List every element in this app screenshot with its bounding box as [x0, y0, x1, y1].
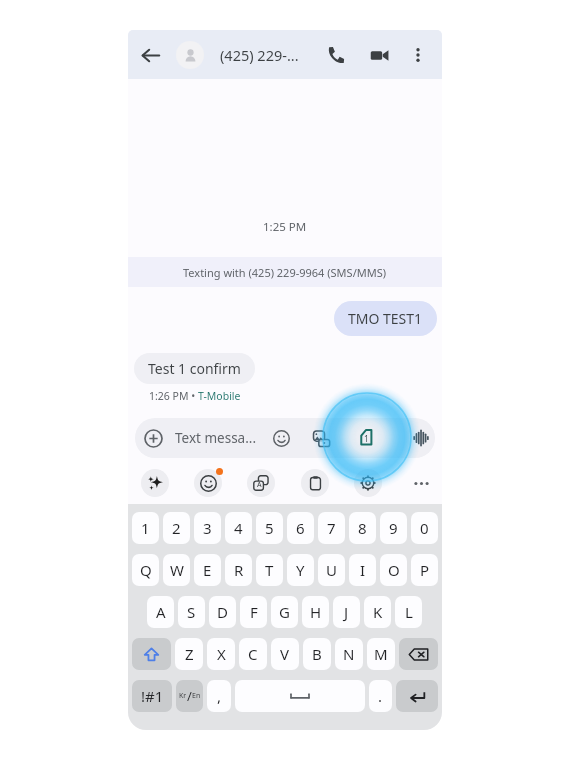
- button[interactable]: Gallery: [308, 425, 334, 451]
- staticText: F: [250, 602, 258, 622]
- button[interactable]: 6: [287, 512, 314, 544]
- staticText: Test 1 confirm: [148, 359, 241, 378]
- staticText: 1:26 PM •: [149, 389, 198, 403]
- staticText: Text messa...: [175, 429, 257, 447]
- button[interactable]: A: [147, 596, 174, 628]
- staticText: T-Mobile: [198, 389, 241, 403]
- staticText: 1:25 PM: [263, 219, 307, 235]
- button[interactable]: Q: [132, 554, 159, 586]
- button[interactable]: P: [411, 554, 438, 586]
- button[interactable]: 1: [132, 512, 159, 544]
- staticText: Kr: [179, 691, 187, 701]
- staticText: 9: [389, 518, 398, 538]
- staticText: A: [156, 602, 166, 622]
- staticText: T: [265, 560, 274, 580]
- button[interactable]: More options: [402, 39, 434, 71]
- staticText: J: [344, 602, 349, 622]
- staticText: /: [187, 687, 192, 705]
- button[interactable]: 7: [318, 512, 345, 544]
- button[interactable]: SIM 1: [351, 425, 377, 451]
- button[interactable]: U: [318, 554, 345, 586]
- button[interactable]: D: [209, 596, 236, 628]
- button[interactable]: 8: [349, 512, 376, 544]
- button[interactable]: C: [239, 638, 267, 670]
- staticText: B: [312, 644, 322, 664]
- button[interactable]: [399, 638, 438, 670]
- button[interactable]: Y: [287, 554, 314, 586]
- button[interactable]: 2: [163, 512, 190, 544]
- staticText: Z: [185, 644, 194, 664]
- button[interactable]: Kr: [176, 680, 203, 712]
- button[interactable]: .: [369, 680, 392, 712]
- button[interactable]: H: [302, 596, 329, 628]
- button[interactable]: M: [367, 638, 395, 670]
- staticText: !#1: [141, 686, 164, 706]
- button[interactable]: Emoji: [268, 425, 294, 451]
- staticText: V: [280, 644, 290, 664]
- staticText: D: [217, 602, 228, 622]
- button[interactable]: 5: [256, 512, 283, 544]
- button[interactable]: Call: [317, 36, 355, 74]
- staticText: En: [192, 691, 201, 701]
- staticText: ,: [217, 686, 222, 706]
- button[interactable]: Add: [135, 418, 435, 458]
- button[interactable]: T: [256, 554, 283, 586]
- button[interactable]: I: [349, 554, 376, 586]
- button[interactable]: Video call: [360, 36, 398, 74]
- button[interactable]: R: [225, 554, 252, 586]
- button[interactable]: 3: [194, 512, 221, 544]
- button[interactable]: 0: [411, 512, 438, 544]
- button[interactable]: L: [395, 596, 422, 628]
- button[interactable]: W: [163, 554, 190, 586]
- button[interactable]: E: [194, 554, 221, 586]
- button[interactable]: Magic compose: [141, 469, 169, 497]
- button[interactable]: TMO TEST1: [334, 301, 437, 336]
- button[interactable]: Z: [175, 638, 203, 670]
- button[interactable]: 9: [380, 512, 407, 544]
- staticText: I: [360, 560, 366, 580]
- staticText: W: [170, 560, 184, 580]
- staticText: Texting with (425) 229-9964 (SMS/MMS): [183, 265, 387, 280]
- button[interactable]: Settings: [354, 469, 382, 497]
- button[interactable]: More: [407, 469, 435, 497]
- staticText: 4: [234, 518, 243, 538]
- staticText: 1: [364, 433, 369, 445]
- button[interactable]: Translate: [247, 469, 275, 497]
- staticText: U: [326, 560, 337, 580]
- button[interactable]: Voice message: [408, 425, 434, 451]
- button[interactable]: B: [303, 638, 331, 670]
- button[interactable]: K: [364, 596, 391, 628]
- button[interactable]: N: [335, 638, 363, 670]
- staticText: N: [343, 644, 355, 664]
- button[interactable]: Back: [132, 37, 168, 73]
- button[interactable]: [235, 680, 365, 712]
- staticText: E: [203, 560, 212, 580]
- staticText: Q: [140, 560, 152, 580]
- staticText: 3: [203, 518, 212, 538]
- button[interactable]: 4: [225, 512, 252, 544]
- staticText: L: [405, 602, 413, 622]
- button[interactable]: G: [271, 596, 298, 628]
- button[interactable]: !#1: [132, 680, 172, 712]
- staticText: G: [279, 602, 290, 622]
- button[interactable]: V: [271, 638, 299, 670]
- button[interactable]: J: [333, 596, 360, 628]
- button[interactable]: X: [207, 638, 235, 670]
- staticText: X: [217, 644, 226, 664]
- button[interactable]: [132, 638, 171, 670]
- staticText: M: [374, 644, 388, 664]
- button[interactable]: Test 1 confirm: [134, 353, 255, 384]
- staticText: 6: [296, 518, 305, 538]
- button[interactable]: Clipboard: [301, 469, 329, 497]
- staticText: K: [373, 602, 383, 622]
- button[interactable]: ,: [207, 680, 231, 712]
- button[interactable]: F: [240, 596, 267, 628]
- staticText: 2: [172, 518, 181, 538]
- button[interactable]: Stickers: [194, 469, 222, 497]
- staticText: A: [257, 480, 262, 490]
- button[interactable]: [396, 680, 438, 712]
- staticText: 1: [141, 518, 150, 538]
- button[interactable]: S: [178, 596, 205, 628]
- staticText: O: [388, 560, 400, 580]
- button[interactable]: O: [380, 554, 407, 586]
